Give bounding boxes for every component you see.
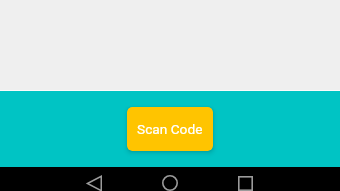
staticText: Scan Code [137,121,203,137]
button[interactable]: Scan Code [127,107,213,151]
button[interactable]: Recents [225,171,265,191]
button[interactable]: Back [74,171,114,191]
button[interactable]: Home [150,171,190,191]
